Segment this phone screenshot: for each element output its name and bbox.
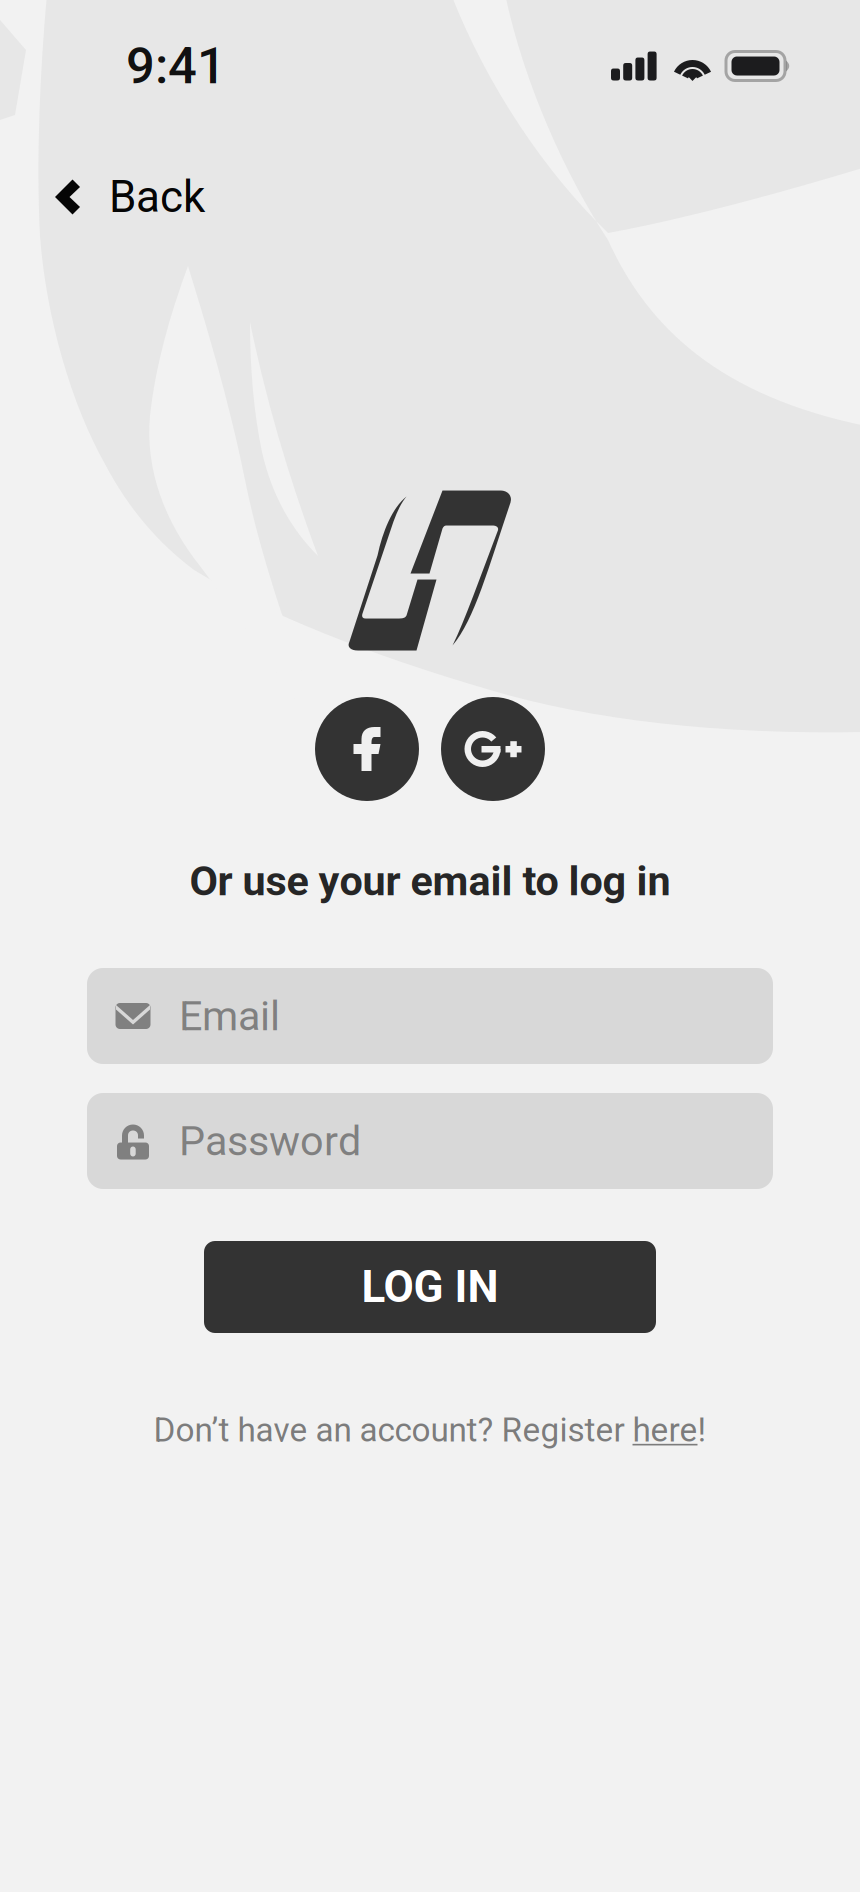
staticText: LOG IN	[361, 1261, 498, 1313]
staticText: Back	[109, 171, 205, 223]
button[interactable]: Email	[87, 968, 773, 1064]
staticText: Password	[179, 1117, 361, 1165]
staticText: here	[632, 1410, 697, 1450]
staticText: Email	[179, 992, 280, 1040]
button[interactable]: Don’t have an account? Register	[153, 1410, 706, 1450]
button[interactable]: Back	[0, 154, 239, 240]
button[interactable]: Password	[87, 1093, 773, 1189]
staticText: 9:41	[126, 36, 226, 96]
button[interactable]: LOG IN	[204, 1241, 656, 1333]
button[interactable]: Log in with Google Plus	[441, 697, 545, 801]
staticText: Or use your email to log in	[189, 857, 670, 905]
staticText: Don’t have an account? Register	[153, 1410, 632, 1450]
button[interactable]: Log in with Facebook	[315, 697, 419, 801]
staticText: !	[697, 1410, 706, 1450]
